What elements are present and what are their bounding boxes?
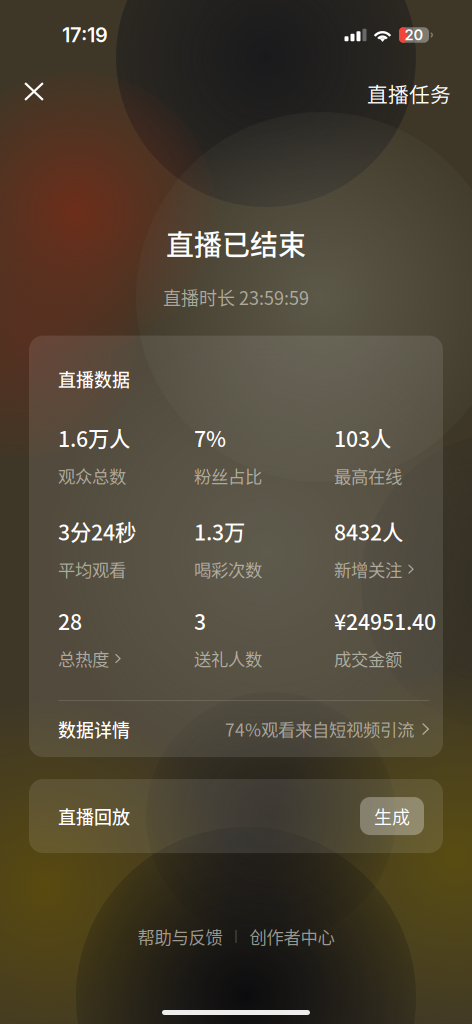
staticText: 粉丝占比: [194, 463, 262, 488]
staticText: 20: [404, 26, 423, 44]
staticText: 成交金额: [334, 646, 402, 671]
staticText: ¥24951.40: [334, 605, 436, 636]
staticText: 1.6万人: [58, 422, 130, 453]
button[interactable]: Close: [10, 70, 58, 113]
staticText: 直播时长 23:59:59: [163, 284, 309, 310]
button[interactable]: 直播任务: [357, 68, 461, 114]
staticText: 最高在线: [334, 463, 402, 488]
staticText: 新增关注: [334, 557, 402, 582]
staticText: 1.3万: [194, 516, 245, 547]
staticText: 生成: [374, 803, 410, 829]
staticText: 数据详情: [58, 716, 130, 742]
button[interactable]: 创作者中心: [236, 915, 347, 958]
staticText: 直播任务: [367, 78, 451, 108]
staticText: 帮助与反馈: [137, 924, 222, 949]
staticText: 17:19: [62, 23, 108, 47]
staticText: 喝彩次数: [194, 557, 262, 582]
staticText: 直播回放: [58, 803, 130, 829]
staticText: 总热度: [58, 646, 109, 671]
staticText: 直播数据: [58, 366, 130, 392]
staticText: 28: [58, 605, 82, 636]
staticText: 3: [194, 605, 206, 636]
button[interactable]: 生成: [360, 797, 424, 835]
staticText: 8432人: [334, 516, 403, 547]
button[interactable]: 帮助与反馈: [124, 915, 235, 958]
staticText: 观众总数: [58, 463, 126, 488]
staticText: 创作者中心: [249, 924, 334, 949]
staticText: 3分24秒: [58, 516, 136, 547]
button[interactable]: 数据详情: [58, 701, 429, 757]
staticText: 平均观看: [58, 557, 126, 582]
staticText: 7%: [194, 422, 226, 453]
staticText: 103人: [334, 422, 391, 453]
staticText: 直播已结束: [166, 223, 306, 263]
staticText: 送礼人数: [194, 646, 262, 671]
staticText: 74%观看来自短视频引流: [225, 716, 414, 742]
